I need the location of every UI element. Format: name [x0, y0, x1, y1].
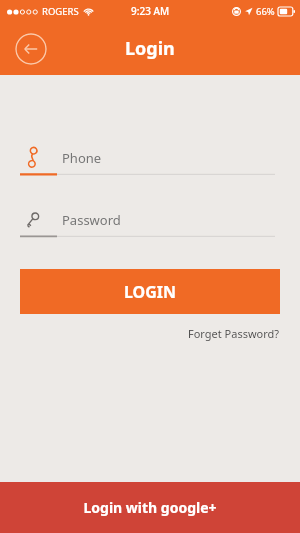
staticText: Login with google+: [83, 498, 217, 517]
staticText: Login: [125, 36, 175, 61]
button[interactable]: LOGIN: [20, 269, 280, 314]
button[interactable]: Forget Password?: [188, 324, 300, 343]
staticText: ROGERS: [42, 5, 79, 18]
staticText: 66%: [256, 5, 275, 18]
staticText: Forget Password?: [188, 326, 280, 341]
button[interactable]: Back: [15, 33, 47, 65]
staticText: Password: [62, 211, 121, 229]
staticText: Phone: [62, 149, 102, 167]
button[interactable]: Login with google+: [0, 482, 300, 533]
button[interactable]: Password: [0, 204, 300, 238]
staticText: 9:23 AM: [131, 4, 170, 18]
staticText: LOGIN: [124, 281, 177, 303]
button[interactable]: Phone: [0, 142, 300, 176]
